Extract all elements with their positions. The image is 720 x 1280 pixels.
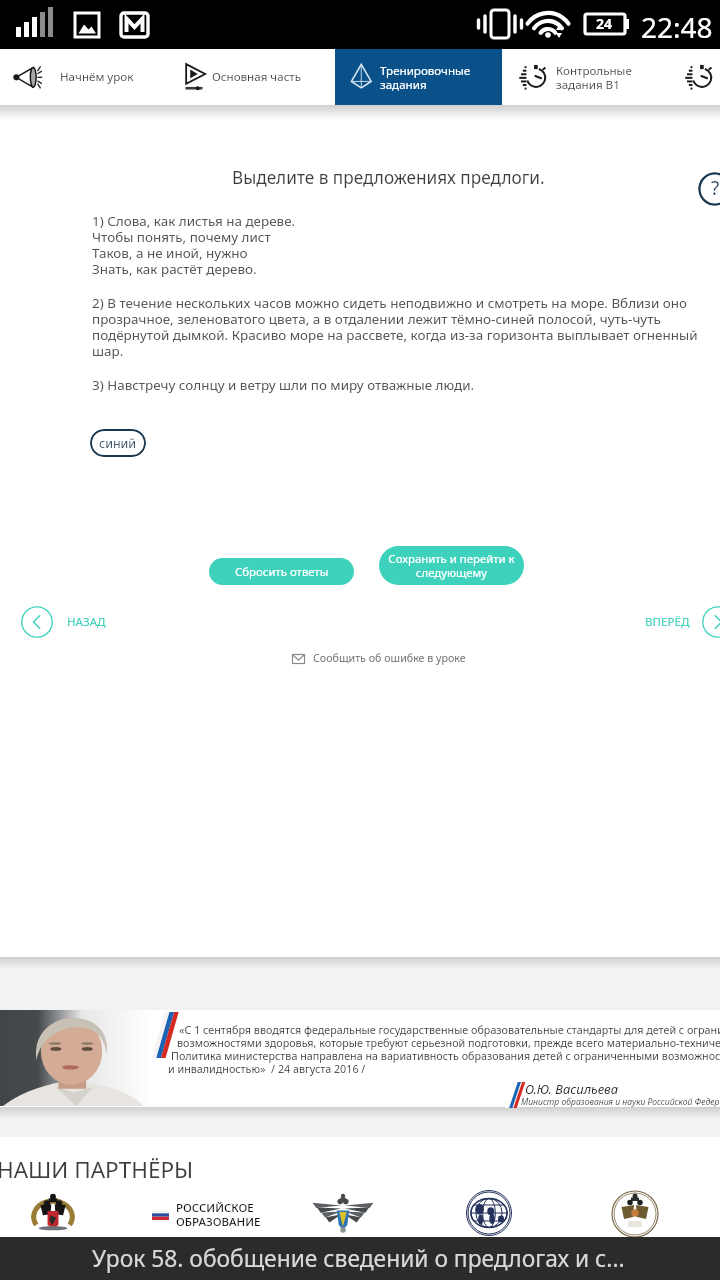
staticText: Министр образования и науки Российской Ф… [521, 1096, 720, 1108]
button[interactable]: Основная часть [168, 49, 335, 105]
staticText: Политика министерства направлена на вари… [171, 1049, 720, 1064]
button[interactable]: Урок 58. обобщение сведений о предлогах … [0, 1237, 720, 1280]
button[interactable]: НАЗАД [13, 602, 116, 642]
staticText: ? [711, 175, 720, 201]
button[interactable]: Сохранить и перейти к следующему [379, 546, 524, 585]
staticText: 24 [596, 14, 613, 33]
staticText: О.Ю. Васильева [525, 1080, 619, 1098]
button[interactable]: Тренировочные задания [335, 49, 502, 105]
staticText: Контрольные задания B1 [556, 63, 632, 92]
staticText: 2) В течение нескольких часов можно сиде… [92, 294, 704, 360]
button[interactable]: синий [90, 429, 146, 457]
staticText: Основная часть [212, 69, 302, 85]
staticText: Выделите в предложениях предлоги. [232, 166, 545, 189]
staticText: и инвалидностью» / 24 августа 2016 / [168, 1062, 720, 1077]
button[interactable]: Начнём урок [0, 49, 167, 105]
button[interactable]: Справка [698, 172, 720, 206]
staticText: Начнём урок [60, 69, 134, 85]
staticText: ВПЕРЁД [645, 614, 690, 630]
staticText: 22:48 [641, 8, 713, 46]
staticText: Урок 58. обобщение сведений о предлогах … [92, 1243, 625, 1274]
staticText: «С 1 сентября вводятся федеральные госуд… [179, 1023, 720, 1038]
staticText: Сообщить об ошибке в уроке [313, 651, 466, 666]
staticText: НАШИ ПАРТНЁРЫ [0, 1154, 194, 1185]
staticText: Тренировочные задания [380, 63, 471, 92]
button[interactable]: Ещё [671, 49, 720, 105]
staticText: РОССИЙСКОЕ ОБРАЗОВАНИЕ [176, 1200, 261, 1229]
staticText: НАЗАД [67, 614, 106, 630]
staticText: возможностями здоровья, которые требуют … [177, 1036, 720, 1051]
staticText: 1) Слова, как листья на дереве. Чтобы по… [92, 212, 296, 278]
button[interactable]: ВПЕРЁД [637, 602, 720, 642]
staticText: синий [99, 435, 137, 452]
button[interactable]: Сообщить об ошибке в уроке [288, 647, 470, 670]
staticText: Сбросить ответы [235, 564, 329, 580]
button[interactable]: Контрольные задания B1 [503, 49, 670, 105]
button[interactable]: Сбросить ответы [209, 558, 354, 585]
staticText: Сохранить и перейти к следующему [388, 551, 515, 580]
staticText: 3) Навстречу солнцу и ветру шли по миру … [92, 376, 475, 394]
